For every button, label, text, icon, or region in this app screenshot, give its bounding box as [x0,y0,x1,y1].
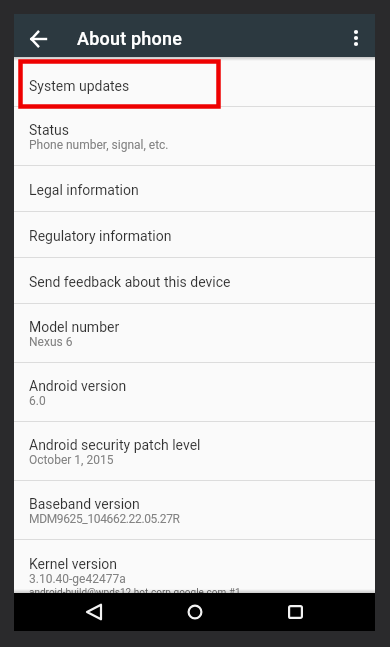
button[interactable]: Kernel version [14,540,375,593]
button[interactable]: Model number [14,304,375,362]
button[interactable] [14,19,64,57]
button[interactable] [337,19,375,57]
button[interactable]: Send feedback about this device [14,258,375,303]
button[interactable]: Status [14,107,375,165]
staticText: Baseband version [29,496,140,512]
button[interactable]: System updates [14,61,375,106]
button[interactable]: Android version [14,363,375,421]
staticText: Regulatory information [29,228,172,244]
staticText: Android security patch level [29,437,201,453]
staticText: Legal information [29,182,139,198]
staticText: 6.0 [29,394,46,408]
button[interactable] [174,593,215,631]
button[interactable]: Legal information [14,166,375,211]
staticText: Phone number, signal, etc. [29,138,169,152]
staticText: 3.10.40-ge42477a [29,572,126,586]
staticText: Model number [29,319,120,335]
staticText: Send feedback about this device [29,274,231,290]
staticText: MDM9625_104662.22.05.27R [29,512,180,526]
staticText: Kernel version [29,556,118,572]
staticText: October 1, 2015 [29,453,114,467]
staticText: Nexus 6 [29,335,73,349]
staticText: Status [29,122,70,138]
button[interactable]: Android security patch level [14,422,375,480]
staticText: android-build@wpds12.hot.corp.google.com… [29,587,241,593]
staticText: Android version [29,378,127,394]
button[interactable]: Regulatory information [14,212,375,257]
staticText: About phone [77,28,183,49]
button[interactable]: Baseband version [14,481,375,539]
button[interactable] [73,593,114,631]
button[interactable] [275,593,316,631]
staticText: System updates [29,78,130,94]
